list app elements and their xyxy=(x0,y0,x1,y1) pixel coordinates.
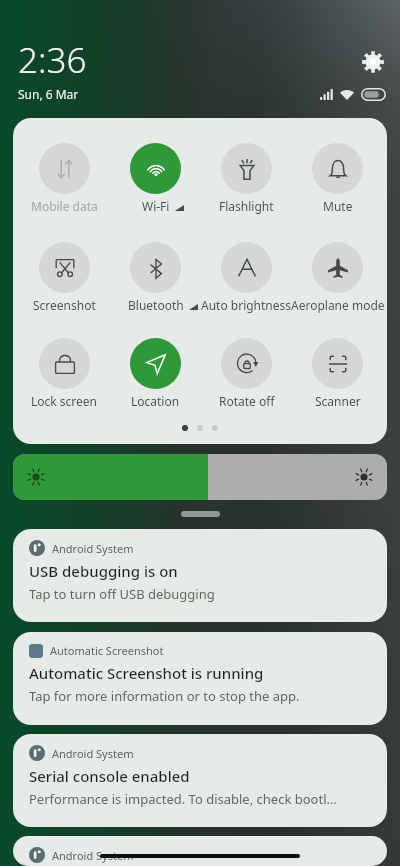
staticText: Sun, 6 Mar xyxy=(18,86,79,102)
staticText: USB debugging is on xyxy=(29,561,178,581)
button[interactable] xyxy=(13,454,387,500)
button[interactable]: Automatic Screenshot xyxy=(13,632,387,725)
staticText: Tap to turn off USB debugging xyxy=(29,585,215,603)
staticText: Android System xyxy=(52,746,134,761)
button[interactable]: Wi-Fi xyxy=(110,143,201,214)
staticText: Scanner xyxy=(315,393,361,409)
staticText: Auto brightness xyxy=(201,297,292,313)
button[interactable]: Mobile data xyxy=(19,143,110,214)
staticText: Aeroplane mode xyxy=(291,297,385,313)
staticText: Performance is impacted. To disable, che… xyxy=(29,790,337,808)
staticText: Android System xyxy=(52,848,134,863)
button[interactable]: Auto brightness xyxy=(201,242,292,313)
staticText: Mobile data xyxy=(31,198,98,214)
button[interactable]: Flashlight xyxy=(201,143,292,214)
staticText: Flashlight xyxy=(219,198,274,214)
button[interactable]: Aeroplane mode xyxy=(292,242,383,313)
button[interactable]: Android System xyxy=(13,734,387,827)
button[interactable]: Android System xyxy=(13,529,387,622)
staticText: Rotate off xyxy=(219,393,275,409)
staticText: Location xyxy=(131,393,180,409)
staticText: Mute xyxy=(323,198,353,214)
button[interactable]: Settings xyxy=(362,51,384,73)
staticText: Lock screen xyxy=(31,393,98,409)
staticText: Wi-Fi xyxy=(142,198,170,214)
button[interactable]: Screenshot xyxy=(19,242,110,313)
button[interactable]: Android System xyxy=(13,836,387,866)
staticText: Automatic Screenshot xyxy=(50,643,164,658)
button[interactable]: Lock screen xyxy=(19,338,110,409)
button[interactable]: Rotate off xyxy=(201,338,292,409)
button[interactable]: Bluetooth xyxy=(110,242,201,313)
button[interactable]: Scanner xyxy=(292,338,383,409)
staticText: Automatic Screenshot is running xyxy=(29,663,264,683)
staticText: Serial console enabled xyxy=(29,766,190,786)
staticText: 2:36 xyxy=(18,36,87,84)
staticText: Bluetooth xyxy=(128,297,184,313)
staticText: Android System xyxy=(52,541,134,556)
staticText: Screenshot xyxy=(33,297,96,313)
staticText: Tap for more information or to stop the … xyxy=(29,687,300,705)
button[interactable]: Mute xyxy=(292,143,383,214)
button[interactable]: Location xyxy=(110,338,201,409)
